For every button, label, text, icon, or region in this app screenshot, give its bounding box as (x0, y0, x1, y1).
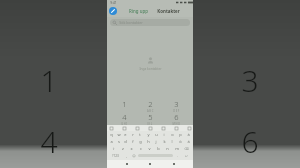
button[interactable]: j (152, 138, 160, 145)
button[interactable]: ?123 (108, 153, 122, 158)
button[interactable]: ☺ (130, 153, 137, 158)
button[interactable]: m (172, 145, 181, 152)
staticText: x (130, 146, 133, 151)
staticText: 1 (122, 99, 127, 109)
button[interactable]: o (168, 131, 176, 138)
button[interactable]: ä (184, 138, 192, 145)
staticText: 4 (122, 112, 127, 122)
button[interactable]: ⇧ (108, 145, 118, 152)
button[interactable]: Ring upp (128, 8, 149, 14)
staticText: 3 (174, 99, 179, 109)
button[interactable]: t (136, 131, 144, 138)
button[interactable]: q (108, 131, 115, 138)
button[interactable]: ⌫ (181, 145, 192, 152)
button[interactable]: x (127, 145, 136, 152)
button[interactable]: Verktyg 2 (135, 126, 139, 130)
button[interactable]: p (176, 131, 184, 138)
staticText: n (166, 146, 169, 151)
staticText: 9:41 (110, 1, 117, 5)
button[interactable]: Verktyg 4 (161, 126, 165, 130)
button[interactable]: Verktyg 0 (109, 126, 113, 130)
button[interactable]: Verktyg 1 (122, 126, 126, 130)
staticText: d (124, 139, 127, 144)
staticText: t (139, 132, 141, 137)
button[interactable]: e (122, 131, 129, 138)
button[interactable]: Sök kontakter (110, 19, 190, 26)
staticText: l (171, 139, 173, 144)
button[interactable]: c (136, 145, 145, 152)
button[interactable]: g (136, 138, 144, 145)
button[interactable]: y (144, 131, 152, 138)
button[interactable]: w (115, 131, 122, 138)
staticText: m (175, 146, 179, 151)
button[interactable]: d (122, 138, 129, 145)
button[interactable]: l (168, 138, 176, 145)
button[interactable]: h (144, 138, 152, 145)
staticText: z (122, 146, 124, 151)
staticText: v (148, 146, 151, 151)
button[interactable]: Tillbaka (123, 160, 131, 168)
staticText: ?123 (112, 154, 119, 158)
button[interactable]: ↵ (181, 153, 192, 158)
button[interactable]: a (108, 138, 115, 145)
button[interactable]: n (163, 145, 172, 152)
button[interactable]: 1 (111, 99, 137, 112)
button[interactable]: b (154, 145, 163, 152)
staticText: e (124, 132, 127, 137)
staticText: ä (187, 139, 190, 144)
staticText: r (132, 132, 134, 137)
staticText: p (179, 132, 182, 137)
button[interactable]: Ny kontakt (109, 7, 117, 15)
staticText: 3 (241, 60, 259, 101)
button[interactable]: ö (176, 138, 184, 145)
staticText: . (177, 154, 178, 158)
button[interactable]: v (145, 145, 154, 152)
staticText: w (117, 132, 121, 137)
staticText: y (147, 132, 150, 137)
staticText: ↵ (185, 154, 188, 158)
button[interactable]: Verktyg 3 (148, 126, 152, 130)
staticText: q (110, 132, 113, 137)
button[interactable]: 6 (163, 112, 189, 125)
button[interactable]: r (129, 131, 136, 138)
staticText: j (155, 139, 157, 144)
staticText: JKL (147, 122, 153, 125)
staticText: f (132, 139, 134, 144)
staticText: Inga kontakter (139, 67, 162, 71)
staticText: g (139, 139, 142, 144)
button[interactable]: , (122, 153, 130, 158)
button[interactable]: 5 (137, 112, 163, 125)
button[interactable]: k (160, 138, 168, 145)
staticText: u (155, 132, 158, 137)
staticText: s (118, 139, 120, 144)
staticText: b (157, 146, 160, 151)
button[interactable]: Verktyg 5 (174, 126, 178, 130)
button[interactable]: å (184, 131, 192, 138)
staticText: 6 (174, 112, 179, 122)
staticText: å (187, 132, 190, 137)
button[interactable]: s (115, 138, 122, 145)
button[interactable]: Kontakter (156, 8, 181, 14)
button[interactable]: Verktyg 6 (187, 126, 191, 130)
button[interactable]: 4 (111, 112, 137, 125)
staticText: Kontakter (157, 8, 180, 14)
staticText: a (110, 139, 113, 144)
staticText: DEF (173, 109, 180, 112)
button[interactable]: f (129, 138, 136, 145)
staticText: c (140, 146, 142, 151)
button[interactable]: 3 (163, 99, 189, 112)
button[interactable]: 2 (137, 99, 163, 112)
staticText: 5 (148, 112, 153, 122)
button[interactable]: u (152, 131, 160, 138)
button[interactable]: z (118, 145, 127, 152)
button[interactable]: i (160, 131, 168, 138)
button[interactable]: Hem (146, 160, 154, 168)
staticText: k (163, 139, 166, 144)
button[interactable]: Senaste (170, 160, 178, 168)
staticText: ABC (147, 109, 154, 112)
staticText: ⇧ (112, 147, 115, 151)
staticText: GHI (121, 122, 128, 125)
